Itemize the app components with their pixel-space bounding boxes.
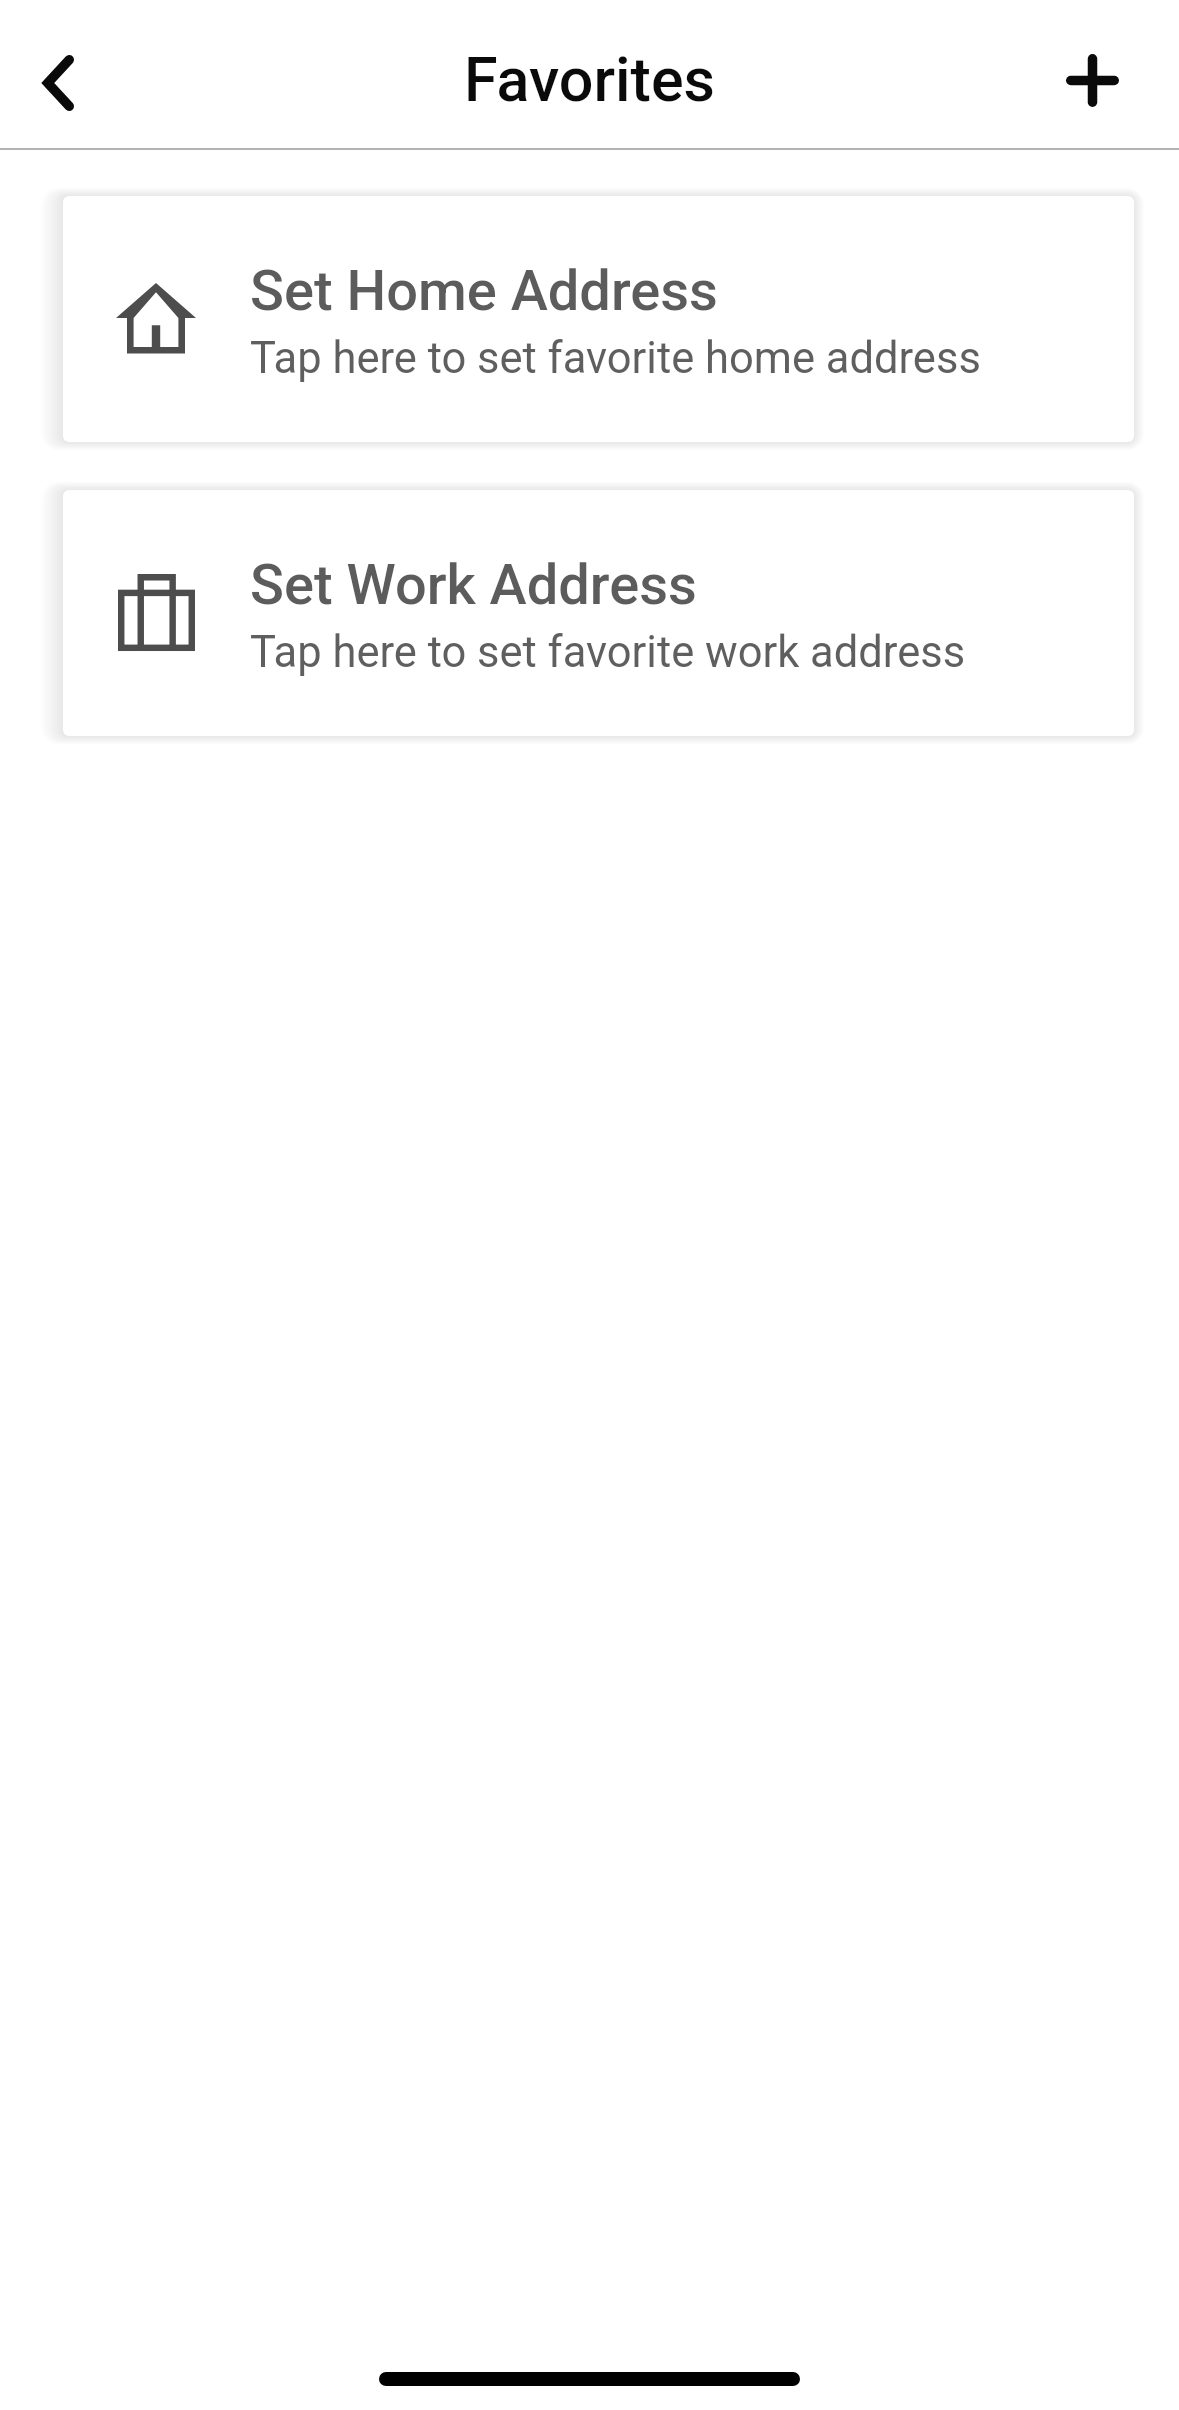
- staticText: Tap here to set favorite home address: [250, 333, 981, 384]
- button[interactable]: Set Work Address: [63, 490, 1134, 736]
- button[interactable]: Add: [1034, 22, 1150, 138]
- button[interactable]: Back: [0, 25, 116, 141]
- staticText: Set Home Address: [250, 258, 718, 324]
- staticText: Set Work Address: [250, 552, 697, 618]
- button[interactable]: Set Home Address: [63, 196, 1134, 442]
- staticText: Tap here to set favorite work address: [250, 627, 966, 678]
- staticText: Favorites: [464, 44, 715, 115]
